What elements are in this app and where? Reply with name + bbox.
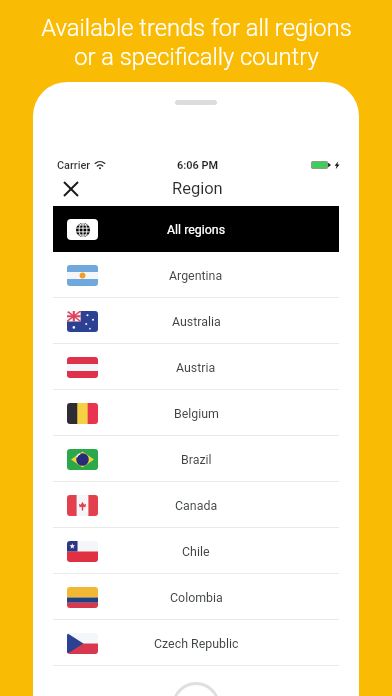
button[interactable]: Belgium xyxy=(53,390,339,436)
staticText: or a specifically country xyxy=(74,43,319,71)
staticText: Canada xyxy=(175,498,218,513)
button[interactable]: Austria xyxy=(53,344,339,390)
button[interactable]: Brazil xyxy=(53,436,339,482)
button[interactable]: Colombia xyxy=(53,574,339,620)
staticText: All regions xyxy=(167,222,226,237)
button[interactable]: Close xyxy=(57,176,85,202)
staticText: Region xyxy=(172,179,223,198)
staticText: 6:06 PM xyxy=(177,159,219,172)
staticText: Chile xyxy=(182,544,210,559)
staticText: Colombia xyxy=(170,590,223,605)
button[interactable]: All regions xyxy=(53,206,339,252)
staticText: Available trends for all regions xyxy=(41,14,352,42)
staticText: Australia xyxy=(172,314,221,329)
staticText: Czech Republic xyxy=(154,636,239,651)
staticText: Carrier xyxy=(57,159,91,172)
staticText: Brazil xyxy=(181,452,212,467)
staticText: Belgium xyxy=(174,406,219,421)
button[interactable]: Czech Republic xyxy=(53,620,339,666)
staticText: Austria xyxy=(176,360,216,375)
button[interactable]: Argentina xyxy=(53,252,339,298)
button[interactable]: Australia xyxy=(53,298,339,344)
button[interactable]: Chile xyxy=(53,528,339,574)
button[interactable]: Canada xyxy=(53,482,339,528)
staticText: Argentina xyxy=(169,268,223,283)
